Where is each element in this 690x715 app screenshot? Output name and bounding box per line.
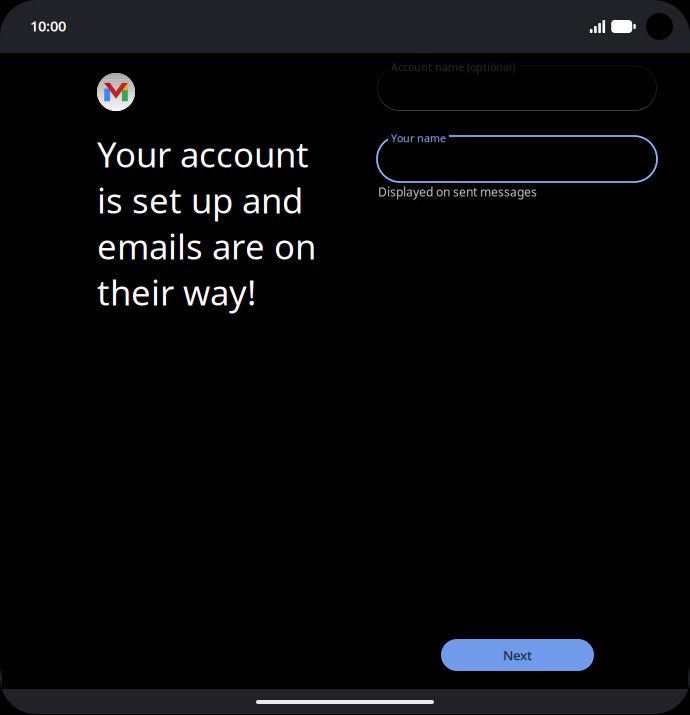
button[interactable]: Your name [377, 136, 657, 182]
staticText: emails are on [97, 223, 316, 269]
staticText: Displayed on sent messages [378, 184, 537, 200]
staticText: Your account [97, 131, 309, 177]
staticText: Your name [391, 131, 446, 145]
staticText: is set up and [97, 177, 303, 223]
button[interactable]: Next [441, 639, 594, 671]
staticText: Account name (optional) [391, 60, 515, 74]
staticText: their way! [97, 269, 256, 315]
staticText: Next [503, 646, 532, 664]
button[interactable]: Account name (optional) [377, 65, 657, 111]
staticText: 10:00 [30, 16, 66, 35]
